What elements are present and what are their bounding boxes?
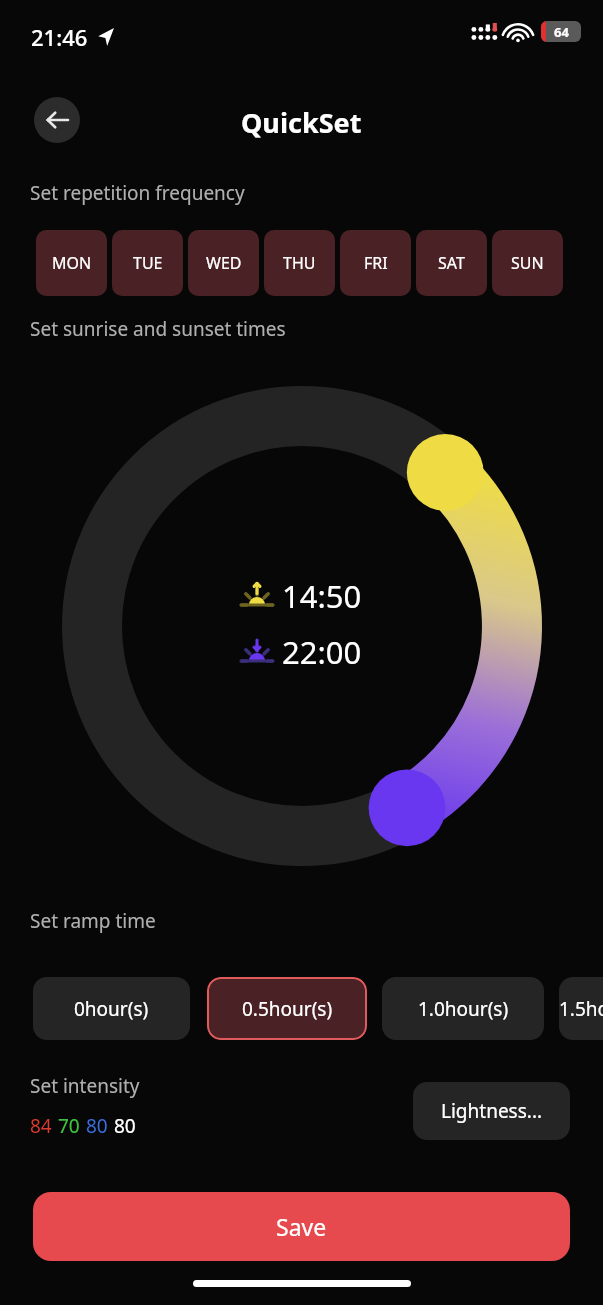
button[interactable]: THU [264, 230, 335, 296]
button[interactable]: 0.5hour(s) [207, 977, 367, 1040]
staticText: Set ramp time [30, 908, 156, 934]
staticText: MON [52, 252, 92, 274]
staticText: 21:46 [31, 22, 88, 52]
staticText: Set repetition frequency [30, 180, 245, 206]
staticText: Save [276, 1211, 327, 1242]
button[interactable]: 1.5hour(s) [559, 977, 603, 1040]
staticText: TUE [133, 252, 163, 274]
staticText: THU [283, 252, 316, 274]
staticText: 70 [58, 1113, 80, 1139]
button[interactable]: Lightness... [413, 1082, 570, 1140]
staticText: Set sunrise and sunset times [30, 316, 286, 342]
staticText: 1.5hour(s) [559, 996, 603, 1022]
staticText: Set intensity [30, 1073, 140, 1099]
staticText: 64 [554, 23, 569, 41]
button[interactable]: 0hour(s) [33, 977, 190, 1040]
staticText: 22:00 [282, 631, 362, 673]
button[interactable]: MON [36, 230, 107, 296]
button[interactable]: 1.0hour(s) [382, 977, 544, 1040]
staticText: QuickSet [241, 104, 362, 141]
button[interactable]: FRI [340, 230, 411, 296]
staticText: 80 [86, 1113, 108, 1139]
staticText: 14:50 [282, 575, 362, 617]
staticText: Lightness... [441, 1098, 543, 1124]
staticText: SAT [438, 252, 465, 274]
button[interactable]: Save [33, 1192, 570, 1261]
button[interactable]: SAT [416, 230, 487, 296]
staticText: 84 [30, 1113, 52, 1139]
staticText: FRI [364, 252, 388, 274]
staticText: 1.0hour(s) [418, 996, 509, 1022]
staticText: 0.5hour(s) [242, 996, 333, 1022]
staticText: SUN [511, 252, 544, 274]
button[interactable]: SUN [492, 230, 563, 296]
button[interactable]: WED [188, 230, 259, 296]
staticText: 0hour(s) [74, 996, 149, 1022]
button[interactable]: TUE [112, 230, 183, 296]
staticText: 80 [114, 1113, 136, 1139]
staticText: WED [206, 252, 242, 274]
button[interactable]: Back [34, 97, 80, 143]
